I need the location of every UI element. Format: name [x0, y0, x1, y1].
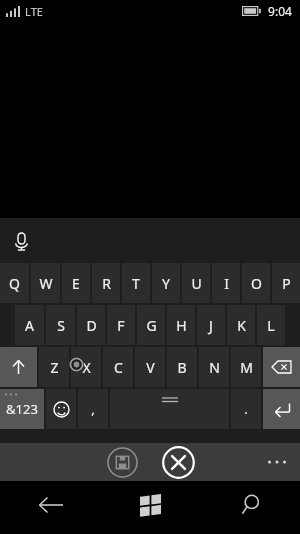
staticText: Q [9, 274, 20, 293]
button[interactable]: C [103, 347, 133, 387]
button[interactable]: I [212, 263, 240, 303]
staticText: L [267, 316, 275, 335]
button[interactable]: E [62, 263, 90, 303]
button[interactable]: Shift [0, 347, 37, 387]
button[interactable]: Search [200, 481, 300, 528]
button[interactable]: &123 [0, 389, 44, 429]
button[interactable]: Close [161, 445, 195, 479]
button[interactable]: K [227, 305, 255, 345]
staticText: R [102, 274, 111, 293]
staticText: K [237, 316, 246, 335]
button[interactable]: H [167, 305, 195, 345]
staticText: E [72, 274, 80, 293]
button[interactable]: , [78, 389, 108, 429]
staticText: O [251, 274, 262, 293]
button[interactable]: J [197, 305, 225, 345]
button[interactable]: Space [110, 389, 229, 429]
button[interactable]: O [242, 263, 270, 303]
staticText: &123 [6, 400, 38, 418]
button[interactable]: Save [106, 446, 138, 478]
button[interactable]: Backspace [263, 347, 300, 387]
button[interactable]: S [46, 305, 75, 345]
staticText: G [146, 316, 157, 335]
staticText: A [25, 316, 34, 335]
staticText: Z [50, 358, 59, 377]
button[interactable]: W [31, 263, 60, 303]
button[interactable]: D [77, 305, 105, 345]
button[interactable]: T [122, 263, 150, 303]
button[interactable]: Emoji [46, 389, 76, 429]
staticText: . [244, 400, 248, 418]
button[interactable]: V [135, 347, 165, 387]
staticText: Y [162, 274, 170, 293]
staticText: T [132, 274, 140, 293]
staticText: X [82, 358, 91, 377]
button[interactable]: R [92, 263, 120, 303]
staticText: U [191, 274, 202, 293]
button[interactable]: P [272, 263, 300, 303]
staticText: B [177, 358, 187, 377]
staticText: W [39, 274, 53, 293]
staticText: M [240, 358, 253, 377]
button[interactable]: F [107, 305, 135, 345]
staticText: , [91, 400, 95, 418]
button[interactable]: Z [39, 347, 69, 387]
staticText: N [209, 358, 220, 377]
button[interactable]: M [231, 347, 261, 387]
staticText: J [209, 316, 213, 335]
button[interactable]: Enter [263, 389, 300, 429]
button[interactable]: Y [152, 263, 180, 303]
staticText: V [146, 358, 155, 377]
button[interactable]: Voice input [8, 228, 34, 254]
button[interactable]: Back [0, 481, 100, 528]
staticText: LTE [25, 4, 43, 19]
staticText: 9:04 [268, 3, 292, 19]
button[interactable]: Start [100, 481, 200, 528]
button[interactable]: A [15, 305, 44, 345]
button[interactable]: Q [0, 263, 29, 303]
button[interactable]: L [257, 305, 285, 345]
staticText: D [86, 316, 97, 335]
button[interactable]: B [167, 347, 197, 387]
staticText: I [224, 274, 229, 293]
button[interactable]: . [231, 389, 261, 429]
button[interactable]: X [71, 347, 101, 387]
staticText: F [117, 316, 125, 335]
staticText: P [282, 274, 291, 293]
button[interactable]: G [137, 305, 165, 345]
staticText: H [176, 316, 187, 335]
button[interactable]: More options [262, 449, 292, 475]
button[interactable]: N [199, 347, 229, 387]
button[interactable]: U [182, 263, 210, 303]
staticText: C [114, 358, 123, 377]
staticText: S [57, 316, 65, 335]
